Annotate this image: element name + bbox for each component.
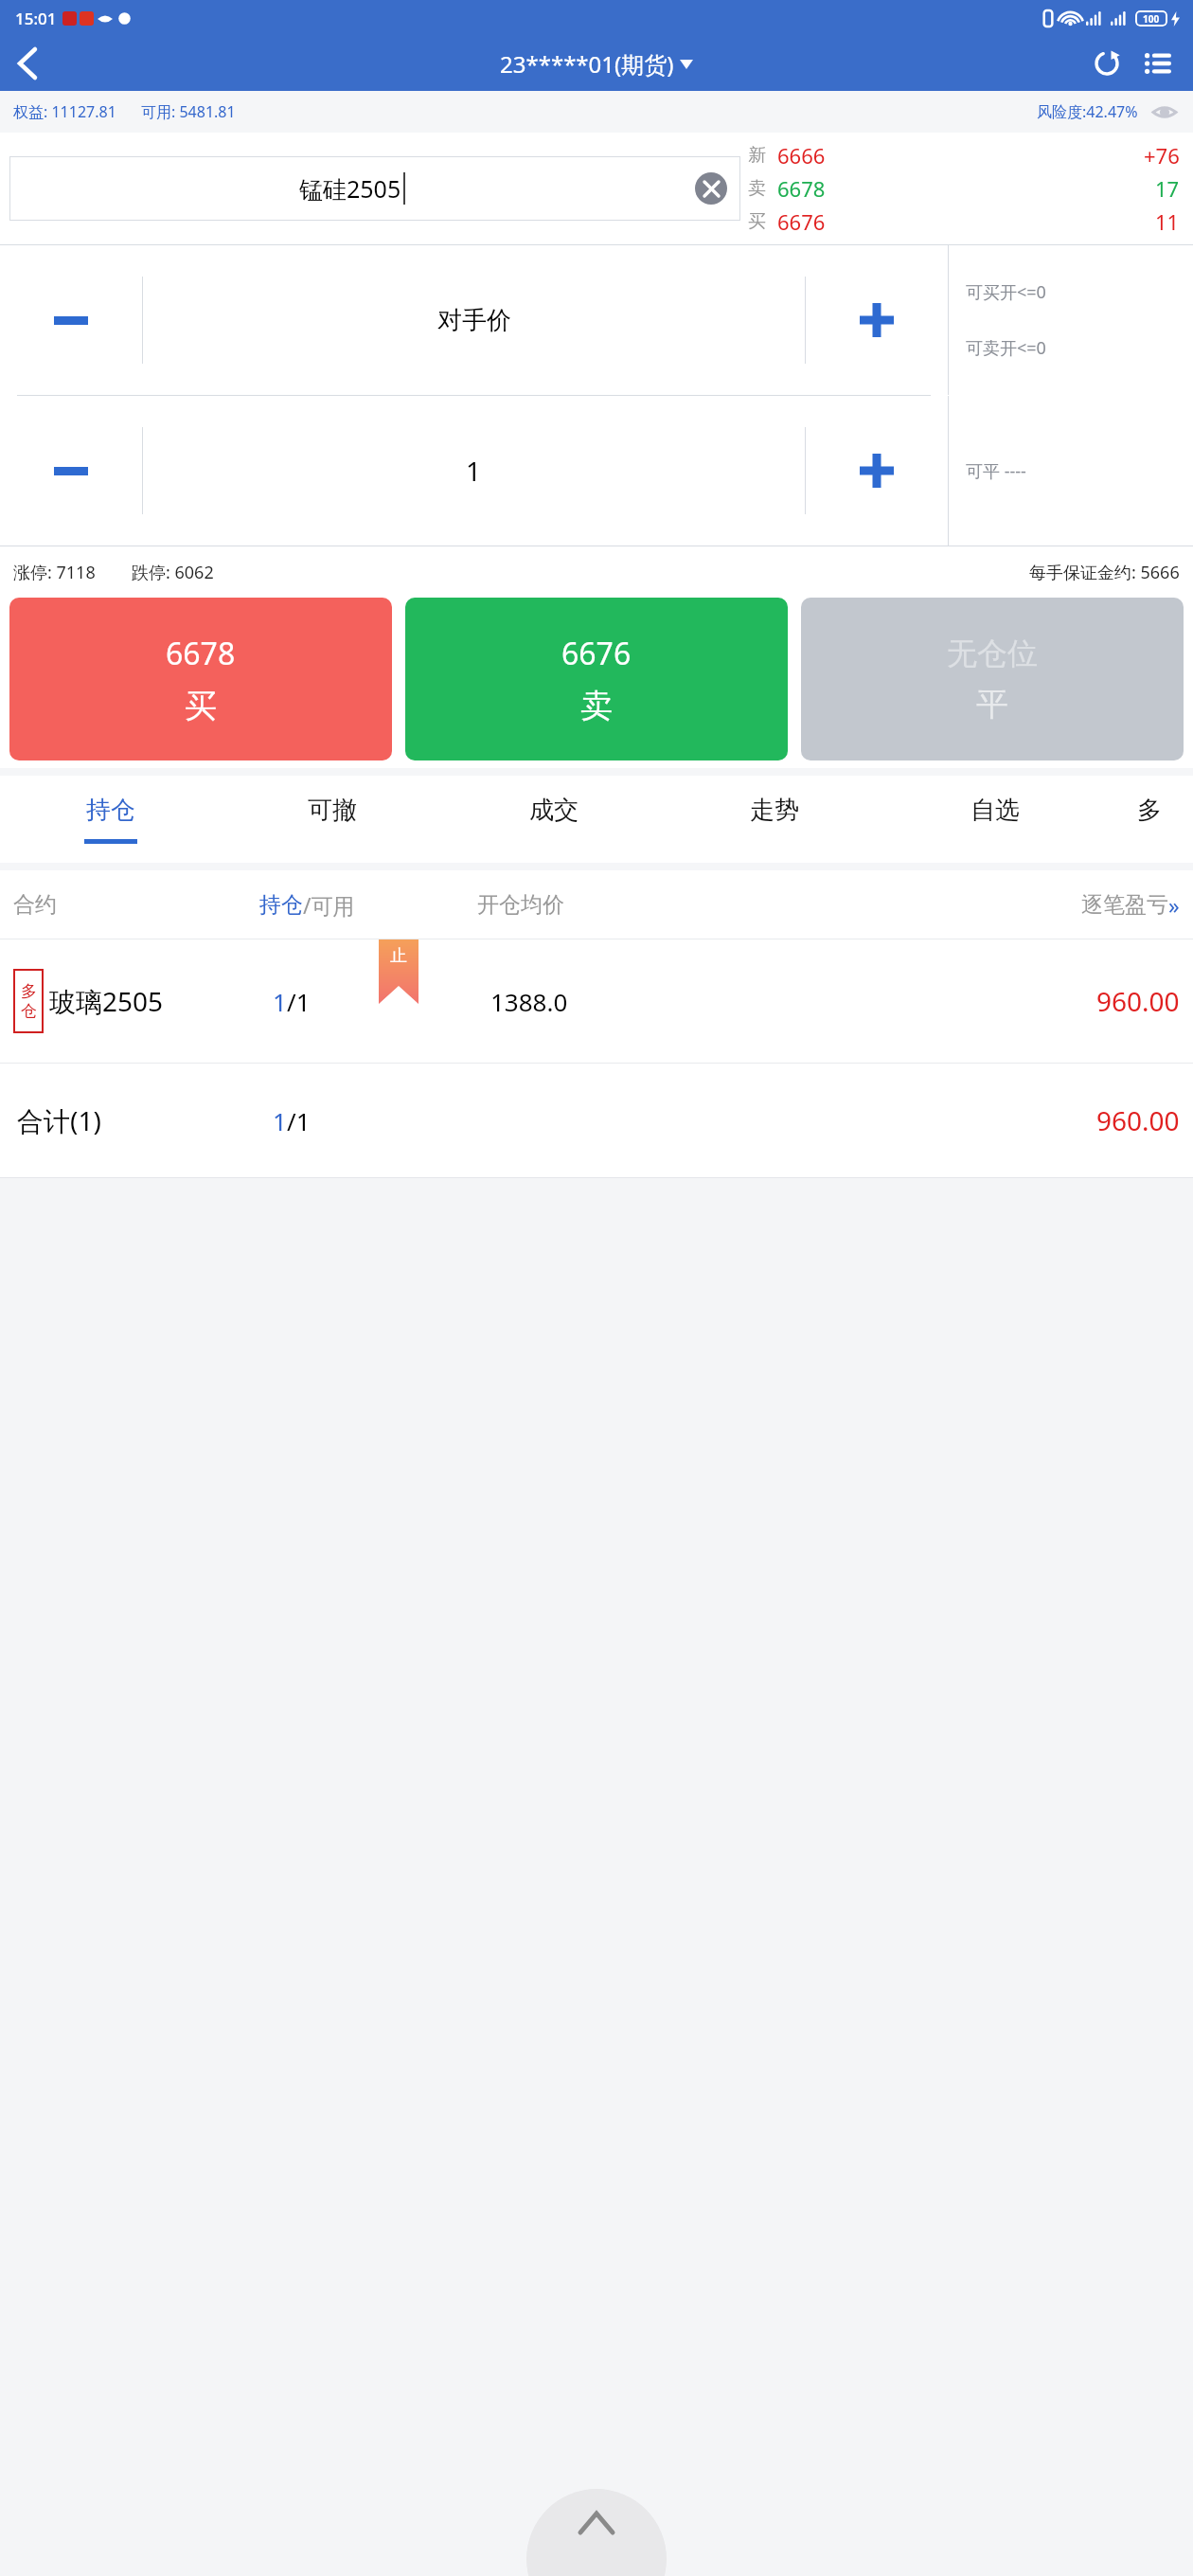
button[interactable]: 多 — [1105, 776, 1193, 863]
staticText: 17 — [1155, 174, 1180, 203]
staticText: 买 — [185, 686, 217, 726]
staticText: /1 — [287, 985, 311, 1018]
button[interactable]: 自选 — [884, 776, 1105, 863]
button[interactable]: 6678 — [9, 598, 392, 760]
button[interactable]: Toggle visibility — [1149, 97, 1180, 127]
staticText: 对手价 — [437, 305, 511, 336]
staticText: 可用: 5481.81 — [141, 101, 236, 122]
staticText: 可买开<=0 — [966, 280, 1046, 304]
button[interactable]: 持仓 — [0, 776, 222, 863]
staticText: 买 — [748, 210, 766, 233]
staticText: 1 — [273, 1104, 287, 1137]
staticText: 仓 — [21, 1001, 37, 1021]
staticText: 权益: 11127.81 — [13, 101, 116, 122]
staticText: 可平 ---- — [966, 459, 1026, 483]
staticText: 多 — [1137, 795, 1162, 826]
staticText: 开仓均价 — [477, 891, 667, 919]
button[interactable]: Clear — [695, 172, 727, 205]
staticText: 100 — [1143, 12, 1160, 26]
staticText: 玻璃2505 — [49, 983, 164, 1019]
button[interactable]: Menu — [1132, 38, 1184, 89]
button[interactable]: 锰硅2505 — [9, 156, 740, 221]
button[interactable]: 可撤 — [222, 776, 443, 863]
button[interactable]: Decrease — [0, 396, 142, 546]
staticText: 每手保证金约: 5666 — [1029, 561, 1180, 584]
button[interactable]: Increase — [806, 396, 948, 546]
staticText: 止 — [390, 945, 407, 967]
staticText: /1 — [287, 1104, 311, 1137]
button[interactable]: Back — [0, 36, 55, 91]
button[interactable]: 对手价 — [143, 245, 805, 395]
staticText: 卖 — [580, 686, 613, 726]
staticText: 成交 — [529, 795, 579, 826]
button[interactable]: Decrease — [0, 245, 142, 395]
staticText: 15:01 — [15, 8, 57, 29]
button[interactable]: Refresh — [1081, 38, 1132, 89]
button[interactable]: 23*****01(期货) — [500, 48, 693, 80]
staticText: 锰硅2505 — [299, 172, 401, 205]
staticText: 持仓 — [259, 891, 303, 919]
staticText: 可撤 — [308, 795, 357, 826]
staticText: 风险度:42.47% — [1037, 101, 1138, 122]
staticText: 卖 — [748, 177, 766, 200]
staticText: 960.00 — [1096, 1102, 1180, 1138]
button[interactable]: Increase — [806, 245, 948, 395]
staticText: 1 — [466, 453, 482, 489]
staticText: 1 — [273, 985, 287, 1018]
staticText: 多 — [21, 981, 37, 1001]
button[interactable]: 成交 — [443, 776, 664, 863]
staticText: 走势 — [750, 795, 799, 826]
staticText: » — [1168, 890, 1180, 920]
staticText: 23*****01(期货) — [500, 48, 674, 80]
staticText: /可用 — [303, 890, 355, 920]
staticText: 新 — [748, 144, 766, 167]
button[interactable]: 6676 — [405, 598, 788, 760]
staticText: +76 — [1144, 141, 1180, 170]
staticText: 合约 — [13, 891, 259, 919]
staticText: 1388.0 — [490, 985, 568, 1018]
staticText: 跌停: 6062 — [132, 561, 214, 584]
staticText: 11 — [1155, 207, 1180, 236]
staticText: 合计(1) — [17, 1102, 101, 1138]
staticText: 逐笔盈亏 — [1081, 891, 1168, 919]
staticText: 持仓 — [86, 795, 135, 826]
staticText: 6678 — [777, 174, 826, 203]
button[interactable]: 止 — [0, 939, 1193, 1063]
staticText: 涨停: 7118 — [13, 561, 96, 584]
staticText: 自选 — [970, 795, 1020, 826]
staticText: 6666 — [777, 141, 826, 170]
staticText: 平 — [976, 684, 1008, 724]
staticText: 6676 — [561, 633, 632, 674]
staticText: 可卖开<=0 — [966, 336, 1046, 360]
button[interactable]: 走势 — [664, 776, 884, 863]
button[interactable]: 1 — [143, 396, 805, 546]
button[interactable]: 无仓位 — [801, 598, 1184, 760]
staticText: 6676 — [777, 207, 826, 236]
staticText: 960.00 — [1096, 983, 1180, 1019]
staticText: 无仓位 — [947, 635, 1038, 672]
button[interactable]: Expand — [526, 2489, 667, 2576]
staticText: 6678 — [166, 633, 236, 674]
